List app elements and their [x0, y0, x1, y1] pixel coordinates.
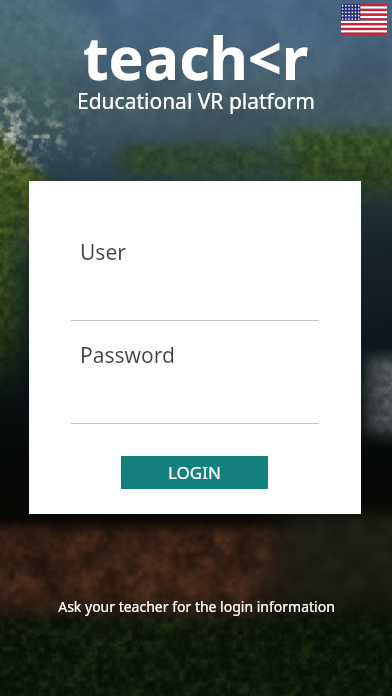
button[interactable]: LOGIN	[121, 456, 268, 489]
button[interactable]: Language: English	[341, 4, 387, 35]
staticText: User	[80, 238, 126, 267]
staticText: LOGIN	[168, 461, 221, 484]
staticText: Educational VR platform	[77, 87, 315, 116]
staticText: teach<r	[83, 17, 309, 97]
staticText: Password	[80, 341, 175, 370]
staticText: Ask your teacher for the login informati…	[58, 597, 335, 616]
